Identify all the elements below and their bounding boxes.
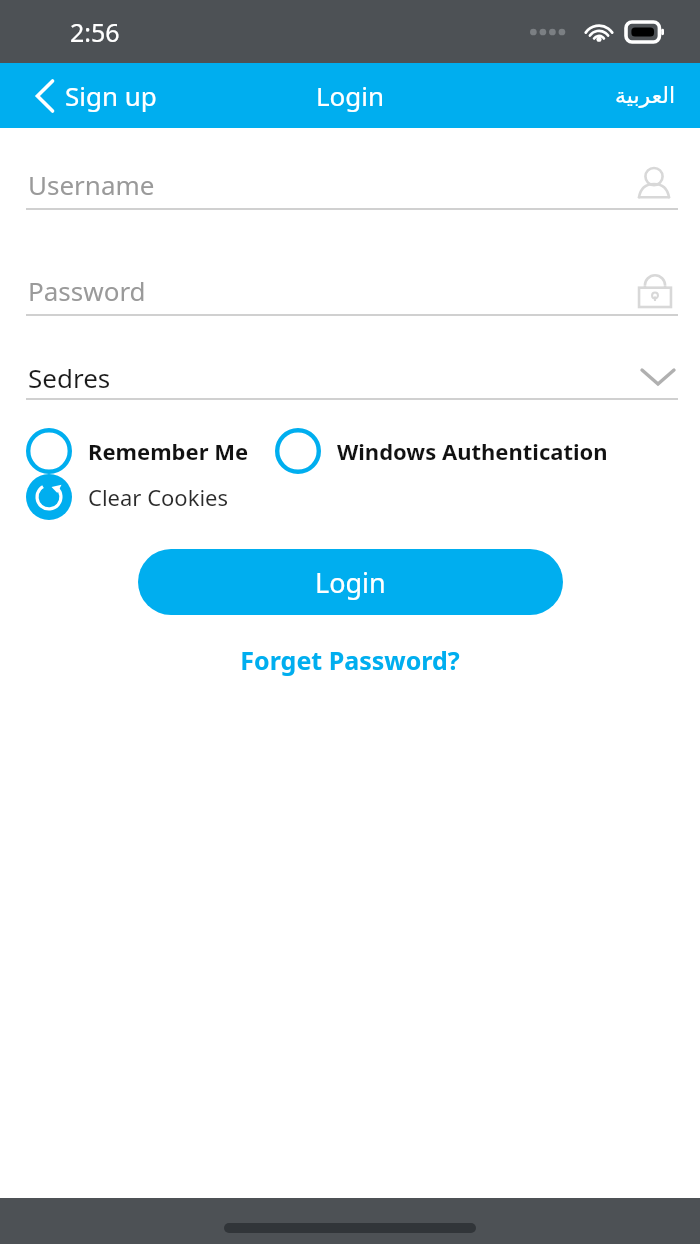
staticText: Sedres xyxy=(28,360,111,395)
button[interactable]: Username xyxy=(0,160,700,210)
staticText: 2:56 xyxy=(70,15,120,49)
staticText: Clear Cookies xyxy=(88,482,229,512)
button[interactable]: Sign up xyxy=(0,70,175,121)
other: Password xyxy=(634,267,676,313)
staticText: Password xyxy=(28,273,146,308)
staticText: Username xyxy=(28,167,155,202)
staticText: Sign up xyxy=(65,78,157,113)
button[interactable]: Remember Me xyxy=(26,428,249,474)
button[interactable]: العربية xyxy=(591,75,700,117)
button[interactable]: Forget Password? xyxy=(224,637,476,683)
staticText: Login xyxy=(315,564,386,601)
button[interactable]: Windows Authentication xyxy=(275,428,608,474)
button[interactable]: Login xyxy=(138,549,563,615)
other: Username xyxy=(632,162,676,206)
button[interactable]: Clear Cookies xyxy=(26,474,229,520)
other: Clear Cookies xyxy=(26,474,72,520)
staticText: Login xyxy=(316,78,385,113)
button[interactable]: Sedres xyxy=(0,356,700,400)
other: Open dropdown xyxy=(642,367,674,387)
button[interactable]: Password xyxy=(0,266,700,316)
staticText: Windows Authentication xyxy=(337,436,608,466)
staticText: Remember Me xyxy=(88,436,249,466)
